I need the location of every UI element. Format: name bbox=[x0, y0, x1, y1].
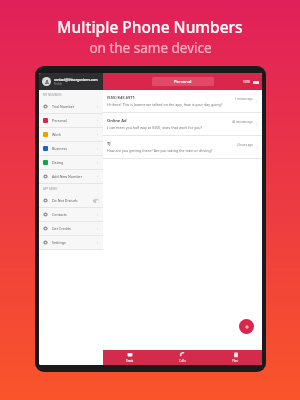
staticText: Business bbox=[52, 146, 67, 151]
button[interactable]: Add New Number bbox=[39, 170, 103, 183]
button[interactable]: Trial Number bbox=[39, 100, 103, 113]
staticText: Hi there! This is Joanne we talked on th… bbox=[107, 102, 223, 107]
staticText: Multiple Phone Numbers bbox=[57, 16, 243, 37]
button[interactable]: Do Not Disturb bbox=[39, 194, 103, 207]
staticText: I can meet you half way at $300, does th… bbox=[107, 125, 202, 130]
staticText: Texts bbox=[126, 359, 134, 363]
button[interactable]: TJ bbox=[103, 136, 262, 158]
staticText: Profile bbox=[54, 82, 62, 86]
staticText: Add New Number bbox=[52, 174, 83, 179]
staticText: (555) 843-6971 bbox=[107, 95, 135, 100]
staticText: Personal bbox=[52, 118, 67, 123]
staticText: Dating bbox=[52, 160, 64, 165]
button[interactable]: Personal bbox=[152, 77, 214, 86]
button[interactable]: Work bbox=[39, 128, 103, 141]
staticText: How are you getting there? Are you takin… bbox=[107, 148, 213, 153]
staticText: Do Not Disturb bbox=[52, 198, 78, 203]
staticText: contact@thisorganizers.com bbox=[54, 78, 98, 82]
staticText: Plan bbox=[232, 359, 239, 363]
staticText: Online Ad bbox=[107, 118, 127, 123]
button[interactable]: Calls bbox=[156, 350, 209, 365]
staticText: 44 minutes ago bbox=[232, 120, 253, 124]
staticText: on the same device bbox=[89, 39, 212, 57]
staticText: 2 hours ago bbox=[237, 143, 253, 147]
button[interactable]: Contacts bbox=[39, 208, 103, 221]
button[interactable]: New message bbox=[239, 319, 254, 334]
button[interactable]: Online Ad bbox=[103, 113, 262, 135]
button[interactable]: (555) 843-6971 bbox=[103, 90, 262, 112]
button[interactable]: Get Credits bbox=[39, 222, 103, 235]
button[interactable]: Business bbox=[39, 142, 103, 155]
button[interactable]: Personal bbox=[39, 114, 103, 127]
staticText: Work bbox=[52, 132, 61, 137]
button[interactable]: Dating bbox=[39, 156, 103, 169]
staticText: 1 minute ago bbox=[235, 97, 253, 101]
staticText: Get Credits bbox=[52, 226, 71, 231]
staticText: MY NUMBERS bbox=[43, 93, 62, 97]
staticText: Personal bbox=[174, 79, 192, 85]
staticText: 100% bbox=[243, 80, 251, 84]
staticText: APP MENU bbox=[43, 187, 58, 191]
staticText: Trial Number bbox=[52, 104, 75, 109]
button[interactable]: Texts bbox=[103, 350, 156, 365]
button[interactable]: contact@thisorganizers.com bbox=[39, 73, 103, 90]
staticText: Contacts bbox=[52, 212, 67, 217]
button[interactable]: Settings bbox=[39, 236, 103, 249]
staticText: TJ bbox=[107, 141, 111, 146]
staticText: Settings bbox=[52, 240, 66, 245]
staticText: Calls bbox=[179, 359, 186, 363]
button[interactable]: Plan bbox=[209, 350, 262, 365]
